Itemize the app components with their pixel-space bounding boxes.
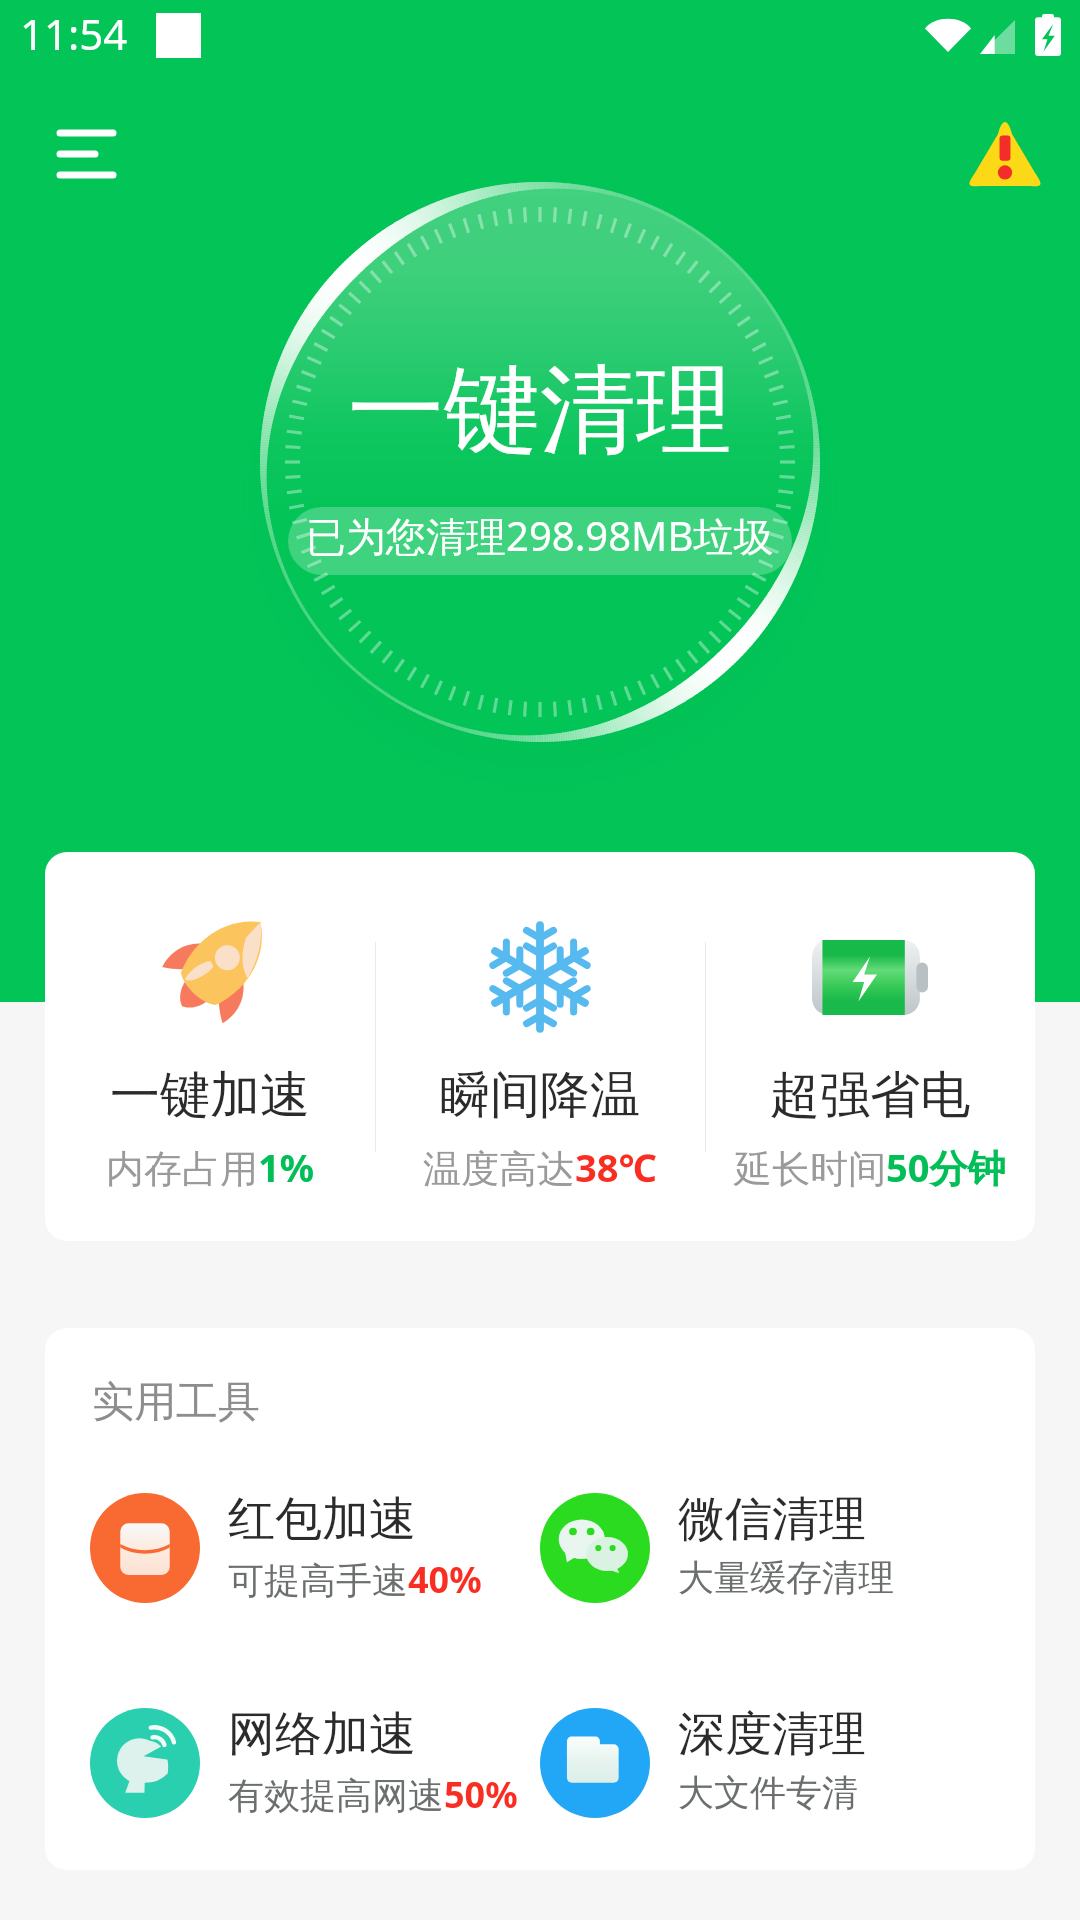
staticText: 大文件专清	[678, 1770, 858, 1815]
staticText: 有效提高网速50%	[228, 1770, 518, 1819]
button[interactable]: 微信清理	[540, 1489, 970, 1607]
staticText: 一键加速	[110, 1064, 310, 1127]
staticText: 瞬间降温	[440, 1064, 640, 1127]
staticText: 一键清理	[348, 351, 732, 472]
staticText: 微信清理	[678, 1490, 866, 1549]
staticText: 内存占用1%	[106, 1141, 315, 1193]
staticText: 实用工具	[92, 1376, 260, 1429]
staticText: 超强省电	[770, 1064, 970, 1127]
staticText: 延长时间50分钟	[734, 1141, 1006, 1193]
button[interactable]: 瞬间降温	[375, 852, 705, 1241]
staticText: 可提高手速40%	[228, 1555, 482, 1604]
staticText: 已为您清理298.98MB垃圾	[306, 508, 774, 563]
button[interactable]: Warning	[963, 112, 1047, 196]
button[interactable]: 一键清理	[260, 182, 820, 742]
staticText: 温度高达38℃	[423, 1141, 657, 1193]
staticText: 11:54	[20, 5, 128, 62]
staticText: 红包加速	[228, 1490, 416, 1549]
staticText: 大量缓存清理	[678, 1555, 894, 1600]
staticText: 深度清理	[678, 1705, 866, 1764]
button[interactable]: 一键加速	[45, 852, 375, 1241]
button[interactable]: 超强省电	[705, 852, 1035, 1241]
button[interactable]: 红包加速	[90, 1489, 520, 1607]
button[interactable]: Menu	[44, 111, 132, 197]
button[interactable]: 深度清理	[540, 1704, 970, 1822]
button[interactable]: 网络加速	[90, 1704, 520, 1822]
staticText: 网络加速	[228, 1705, 416, 1764]
